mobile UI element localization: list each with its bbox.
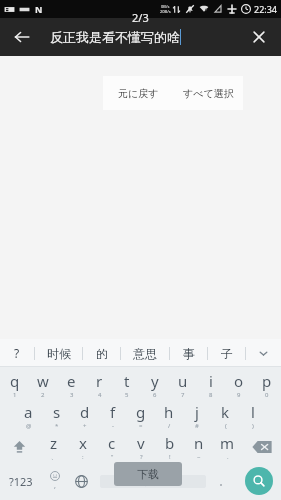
staticText: o bbox=[234, 371, 244, 391]
button[interactable]: Switch language bbox=[68, 462, 95, 500]
staticText: 的 bbox=[96, 346, 108, 361]
button[interactable]: 。 bbox=[210, 462, 237, 500]
staticText: j bbox=[195, 402, 199, 422]
button[interactable]: z bbox=[39, 431, 68, 462]
button[interactable]: y bbox=[141, 369, 169, 400]
staticText: 1 bbox=[13, 391, 17, 399]
button[interactable]: k bbox=[211, 400, 239, 431]
staticText: 。 bbox=[219, 476, 228, 487]
button[interactable]: p bbox=[253, 369, 281, 400]
staticText: 拼音 bbox=[145, 477, 161, 487]
staticText: @ bbox=[26, 422, 32, 430]
button[interactable]: u bbox=[169, 369, 197, 400]
staticText: : bbox=[82, 453, 84, 461]
button[interactable]: s bbox=[43, 400, 71, 431]
staticText: h bbox=[164, 402, 174, 422]
staticText: 0B/s bbox=[161, 4, 170, 9]
staticText: 反正我是看不懂写的啥 bbox=[50, 29, 180, 45]
staticText: 元に戻す bbox=[118, 87, 159, 100]
button[interactable]: a bbox=[14, 400, 43, 431]
staticText: 意思 bbox=[133, 346, 157, 361]
staticText: 时候 bbox=[47, 346, 71, 361]
staticText: 0 bbox=[265, 391, 269, 399]
button[interactable]: v bbox=[126, 431, 155, 462]
staticText: v bbox=[137, 433, 145, 453]
staticText: n bbox=[194, 433, 204, 453]
button[interactable]: t bbox=[113, 369, 141, 400]
button[interactable]: 元に戻す bbox=[103, 76, 173, 110]
staticText: すべて選択 bbox=[183, 87, 234, 100]
staticText: 4 bbox=[98, 391, 102, 399]
staticText: N bbox=[35, 3, 43, 15]
button[interactable]: r bbox=[85, 369, 113, 400]
staticText: k bbox=[221, 402, 230, 422]
button[interactable]: Emoji bbox=[41, 462, 68, 500]
staticText: , bbox=[54, 481, 56, 491]
staticText: ! bbox=[169, 453, 171, 461]
staticText: q bbox=[10, 371, 20, 391]
button[interactable]: Search bbox=[237, 462, 281, 500]
button[interactable]: n bbox=[184, 431, 213, 462]
button[interactable]: b bbox=[155, 431, 184, 462]
staticText: w bbox=[37, 371, 49, 391]
button[interactable]: Back bbox=[6, 21, 38, 53]
button[interactable]: Expand suggestions bbox=[246, 339, 281, 367]
button[interactable]: x bbox=[68, 431, 97, 462]
button[interactable]: 拼音 bbox=[95, 462, 210, 500]
staticText: b bbox=[165, 433, 175, 453]
button[interactable]: 意思 bbox=[121, 339, 169, 367]
staticText: p bbox=[262, 371, 272, 391]
button[interactable]: Clear bbox=[243, 21, 275, 53]
button[interactable]: 时候 bbox=[35, 339, 82, 367]
staticText: 子 bbox=[221, 346, 233, 361]
button[interactable]: 的 bbox=[83, 339, 120, 367]
staticText: 事 bbox=[183, 346, 195, 361]
staticText: 22:34 bbox=[254, 3, 278, 15]
button[interactable]: i bbox=[197, 369, 225, 400]
staticText: ( bbox=[225, 422, 227, 430]
staticText: d bbox=[80, 402, 90, 422]
button[interactable]: m bbox=[213, 431, 242, 462]
button[interactable]: h bbox=[155, 400, 183, 431]
staticText: # bbox=[195, 422, 199, 430]
staticText: i bbox=[209, 371, 213, 391]
staticText: 2 bbox=[41, 391, 45, 399]
staticText: u bbox=[178, 371, 188, 391]
button[interactable]: e bbox=[57, 369, 85, 400]
staticText: s bbox=[53, 402, 61, 422]
staticText: " bbox=[111, 453, 114, 461]
button[interactable]: すべて選択 bbox=[173, 76, 243, 110]
staticText: 3 bbox=[70, 391, 74, 399]
staticText: e bbox=[67, 371, 76, 391]
staticText: g bbox=[136, 402, 146, 422]
staticText: m bbox=[220, 433, 235, 453]
staticText: ? bbox=[14, 345, 20, 361]
button[interactable]: g bbox=[127, 400, 155, 431]
button[interactable]: o bbox=[225, 369, 253, 400]
button[interactable]: 子 bbox=[208, 339, 245, 367]
staticText: 7 bbox=[181, 391, 185, 399]
staticText: a bbox=[24, 402, 33, 422]
button[interactable]: l bbox=[239, 400, 267, 431]
button[interactable]: ?123 bbox=[0, 462, 41, 500]
button[interactable]: f bbox=[99, 400, 127, 431]
staticText: + bbox=[83, 422, 87, 430]
button[interactable]: 事 bbox=[170, 339, 207, 367]
button[interactable]: Shift bbox=[0, 431, 39, 462]
staticText: ? bbox=[140, 453, 143, 461]
staticText: 8 bbox=[209, 391, 213, 399]
staticText: r bbox=[96, 371, 103, 391]
staticText: ) bbox=[252, 422, 254, 430]
button[interactable]: q bbox=[0, 369, 29, 400]
button[interactable]: Backspace bbox=[242, 431, 281, 462]
staticText: z bbox=[50, 433, 58, 453]
staticText: t bbox=[124, 371, 130, 391]
button[interactable]: j bbox=[183, 400, 211, 431]
button[interactable]: d bbox=[71, 400, 99, 431]
staticText: 20B/s bbox=[160, 9, 171, 14]
staticText: 2/3 bbox=[132, 10, 149, 25]
button[interactable]: ? bbox=[0, 339, 34, 367]
button[interactable]: w bbox=[29, 369, 57, 400]
staticText: l bbox=[251, 402, 255, 422]
button[interactable]: c bbox=[97, 431, 126, 462]
